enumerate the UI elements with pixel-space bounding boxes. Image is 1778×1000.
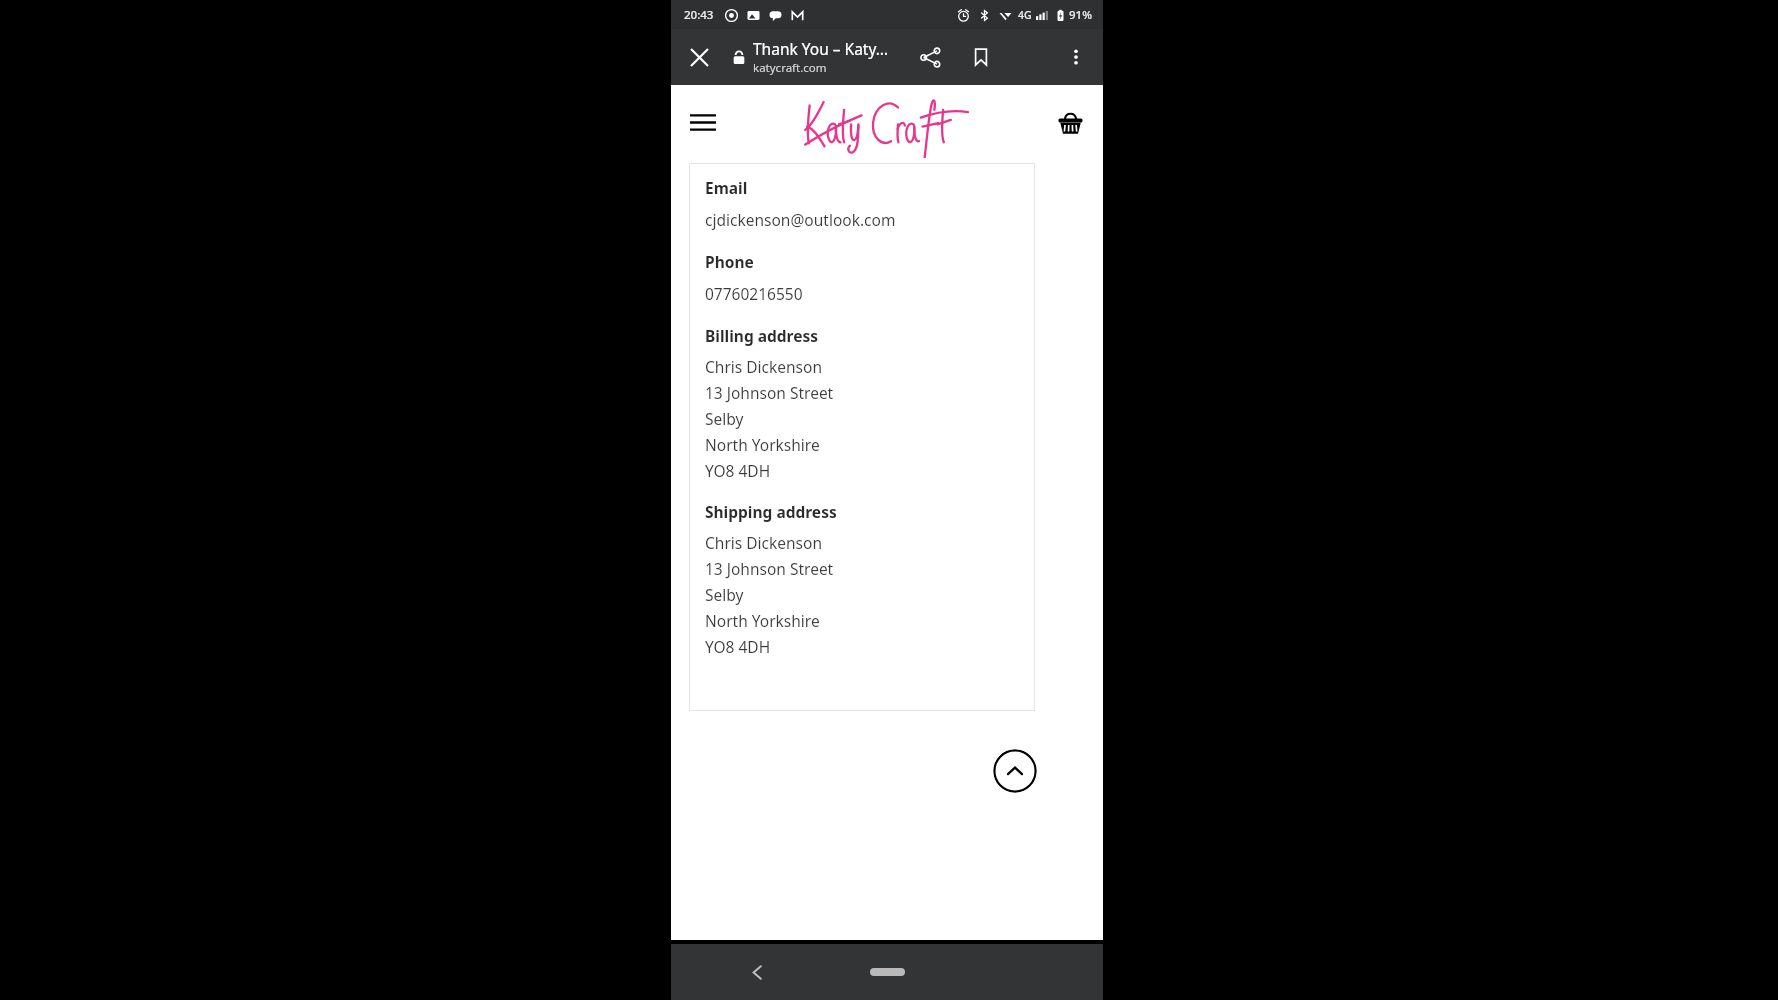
staticText: 4G bbox=[1018, 8, 1032, 22]
staticText: 13 Johnson Street bbox=[705, 558, 834, 579]
staticText: Selby bbox=[705, 584, 744, 605]
staticText: Chris Dickenson bbox=[705, 532, 822, 553]
button[interactable]: Share bbox=[907, 34, 953, 80]
button[interactable]: Close bbox=[677, 35, 721, 79]
staticText: Shipping address bbox=[705, 501, 837, 522]
staticText: 07760216550 bbox=[705, 283, 803, 304]
button[interactable]: Back bbox=[733, 948, 781, 996]
staticText: Thank You – Katy… bbox=[753, 38, 888, 59]
staticText: Chris Dickenson bbox=[705, 356, 822, 377]
button[interactable]: Bookmark bbox=[958, 34, 1004, 80]
button[interactable]: Basket bbox=[1046, 98, 1094, 146]
button[interactable]: Scroll to top bbox=[993, 749, 1037, 793]
staticText: YO8 4DH bbox=[705, 636, 771, 657]
button[interactable]: Home bbox=[857, 955, 917, 989]
button[interactable]: More options bbox=[1053, 34, 1099, 80]
button[interactable]: Menu bbox=[679, 98, 727, 146]
staticText: 20:43 bbox=[684, 7, 714, 23]
button[interactable]: Katy Craft home bbox=[800, 93, 975, 149]
staticText: Selby bbox=[705, 408, 744, 429]
staticText: Email bbox=[705, 177, 748, 198]
staticText: Phone bbox=[705, 251, 754, 272]
staticText: 91% bbox=[1069, 7, 1092, 23]
staticText: YO8 4DH bbox=[705, 460, 771, 481]
staticText: Billing address bbox=[705, 325, 819, 346]
button[interactable]: Thank You – Katy… bbox=[753, 38, 905, 76]
staticText: North Yorkshire bbox=[705, 610, 820, 631]
staticText: North Yorkshire bbox=[705, 434, 820, 455]
staticText: 13 Johnson Street bbox=[705, 382, 834, 403]
staticText: katycraft.com bbox=[753, 60, 827, 76]
staticText: cjdickenson@outlook.com bbox=[705, 209, 896, 230]
